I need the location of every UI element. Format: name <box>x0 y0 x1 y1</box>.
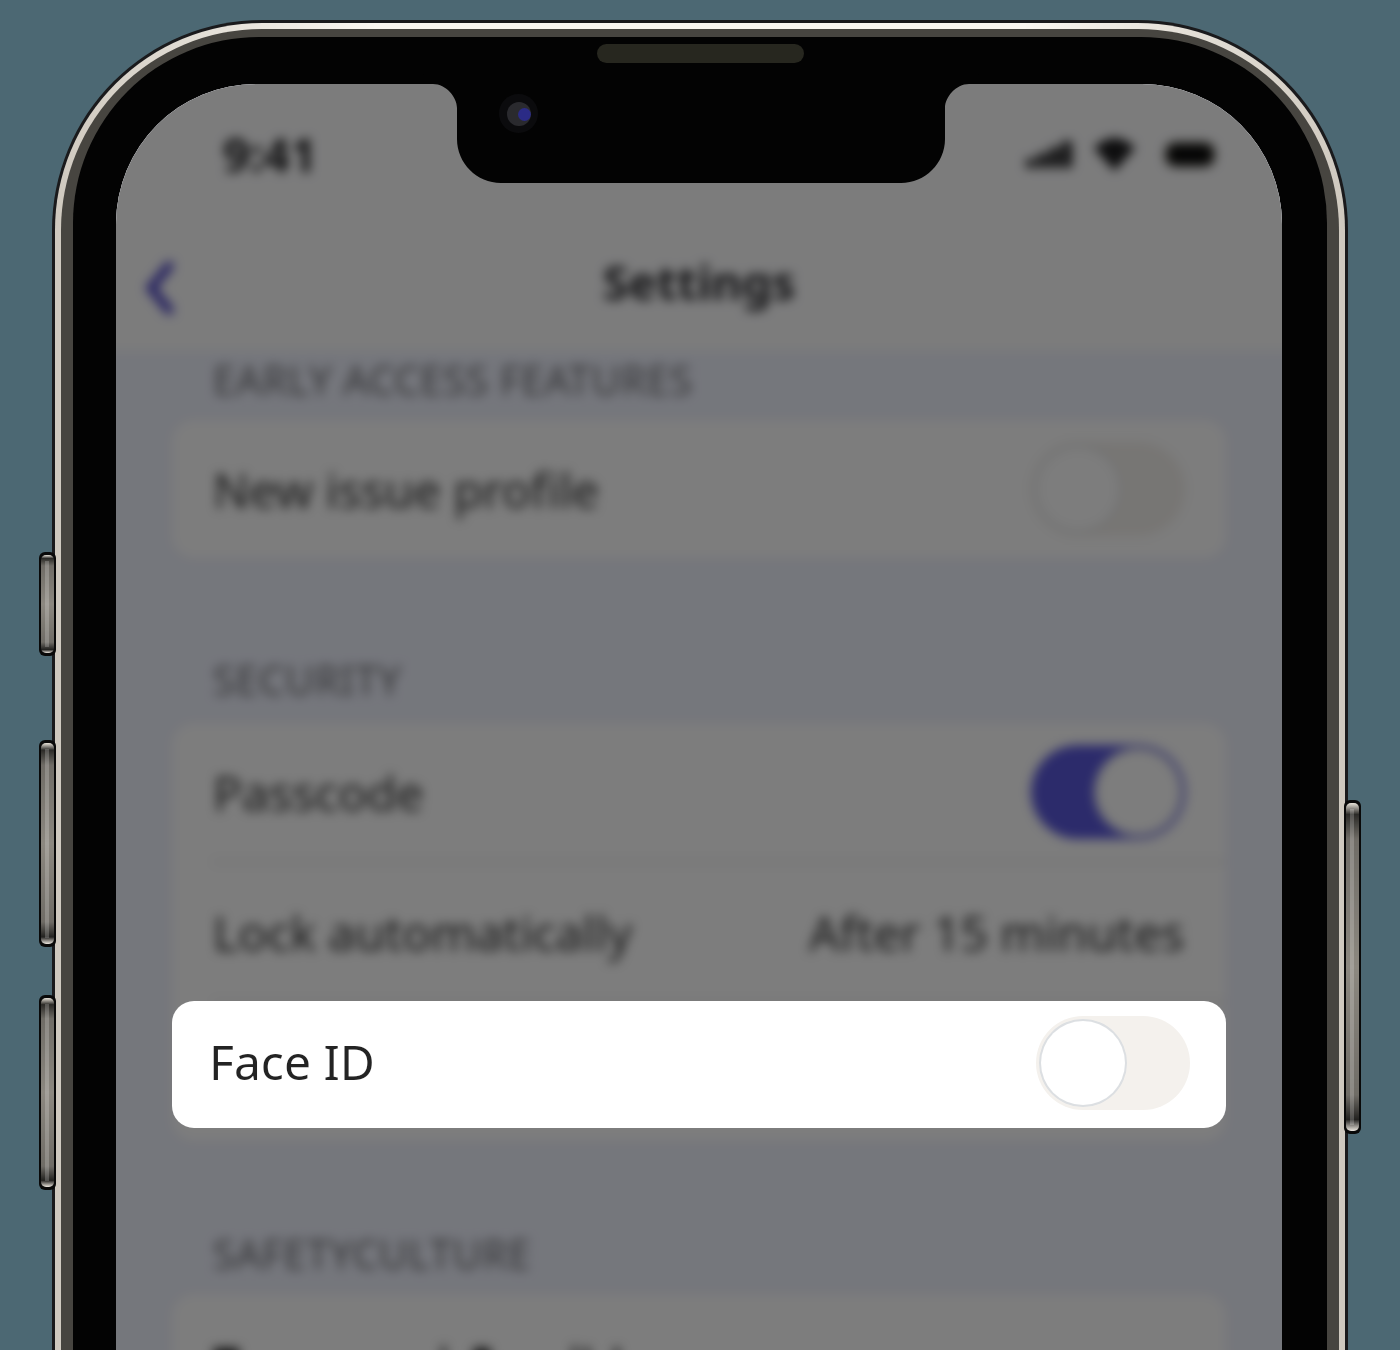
button[interactable]: Passcode <box>172 723 1226 861</box>
staticText: Face ID <box>213 1040 379 1105</box>
button[interactable]: Face ID <box>172 1003 1226 1141</box>
button[interactable]: New issue profile <box>172 420 1226 558</box>
staticText: New issue profile <box>213 457 600 522</box>
staticText: After 15 minutes <box>809 900 1185 965</box>
staticText: Lock automatically <box>213 900 633 965</box>
button[interactable]: Back <box>118 246 202 330</box>
staticText: 9:41 <box>223 122 317 186</box>
button[interactable]: Terms and Conditions <box>172 1294 1226 1350</box>
staticText: SECURITY <box>213 652 402 706</box>
staticText: Passcode <box>213 760 424 825</box>
button[interactable]: Face ID <box>172 1001 1226 1128</box>
button[interactable]: Lock automatically <box>172 863 1226 1001</box>
staticText: Settings <box>116 250 1282 314</box>
staticText: EARLY ACCESS FEATURES <box>213 352 693 406</box>
staticText: SAFETYCULTURE <box>213 1226 532 1280</box>
staticText: Face ID <box>209 1029 375 1094</box>
staticText: Terms and Conditions <box>213 1331 705 1350</box>
